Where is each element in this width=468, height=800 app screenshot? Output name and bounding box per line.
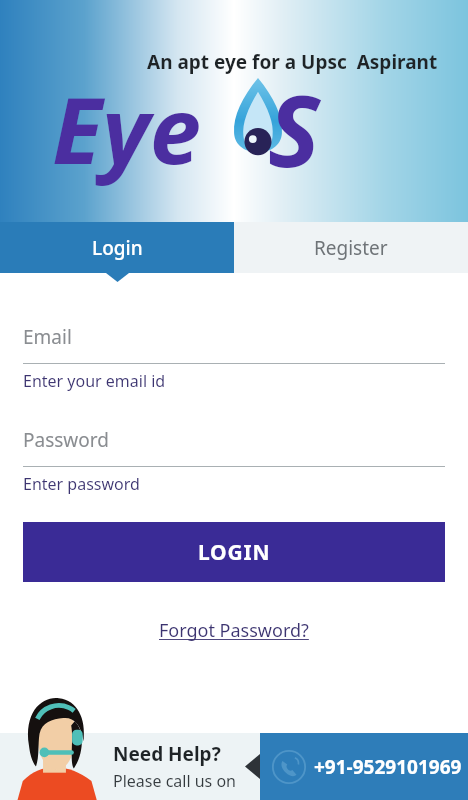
staticText: Forgot Password? (159, 618, 309, 643)
button[interactable]: Register (234, 222, 468, 273)
button[interactable]: LOGIN (23, 522, 445, 582)
staticText: Email (23, 324, 72, 350)
button[interactable]: Login (0, 222, 234, 273)
button[interactable]: Call (260, 733, 468, 800)
button[interactable]: Forgot Password? (153, 612, 315, 649)
other: Call (272, 750, 306, 784)
staticText: An apt eye for a Upsc Aspirant (147, 49, 438, 75)
staticText: Register (314, 235, 388, 261)
staticText: Enter your email id (23, 370, 166, 392)
staticText: Eye (52, 66, 201, 191)
staticText: Need Help? (113, 741, 221, 767)
staticText: Password (23, 427, 109, 453)
staticText: Enter password (23, 473, 140, 495)
staticText: LOGIN (198, 538, 271, 567)
staticText: S (268, 62, 320, 195)
staticText: +91-9529101969 (314, 754, 462, 780)
staticText: Login (92, 235, 143, 261)
staticText: Please call us on (113, 770, 237, 792)
